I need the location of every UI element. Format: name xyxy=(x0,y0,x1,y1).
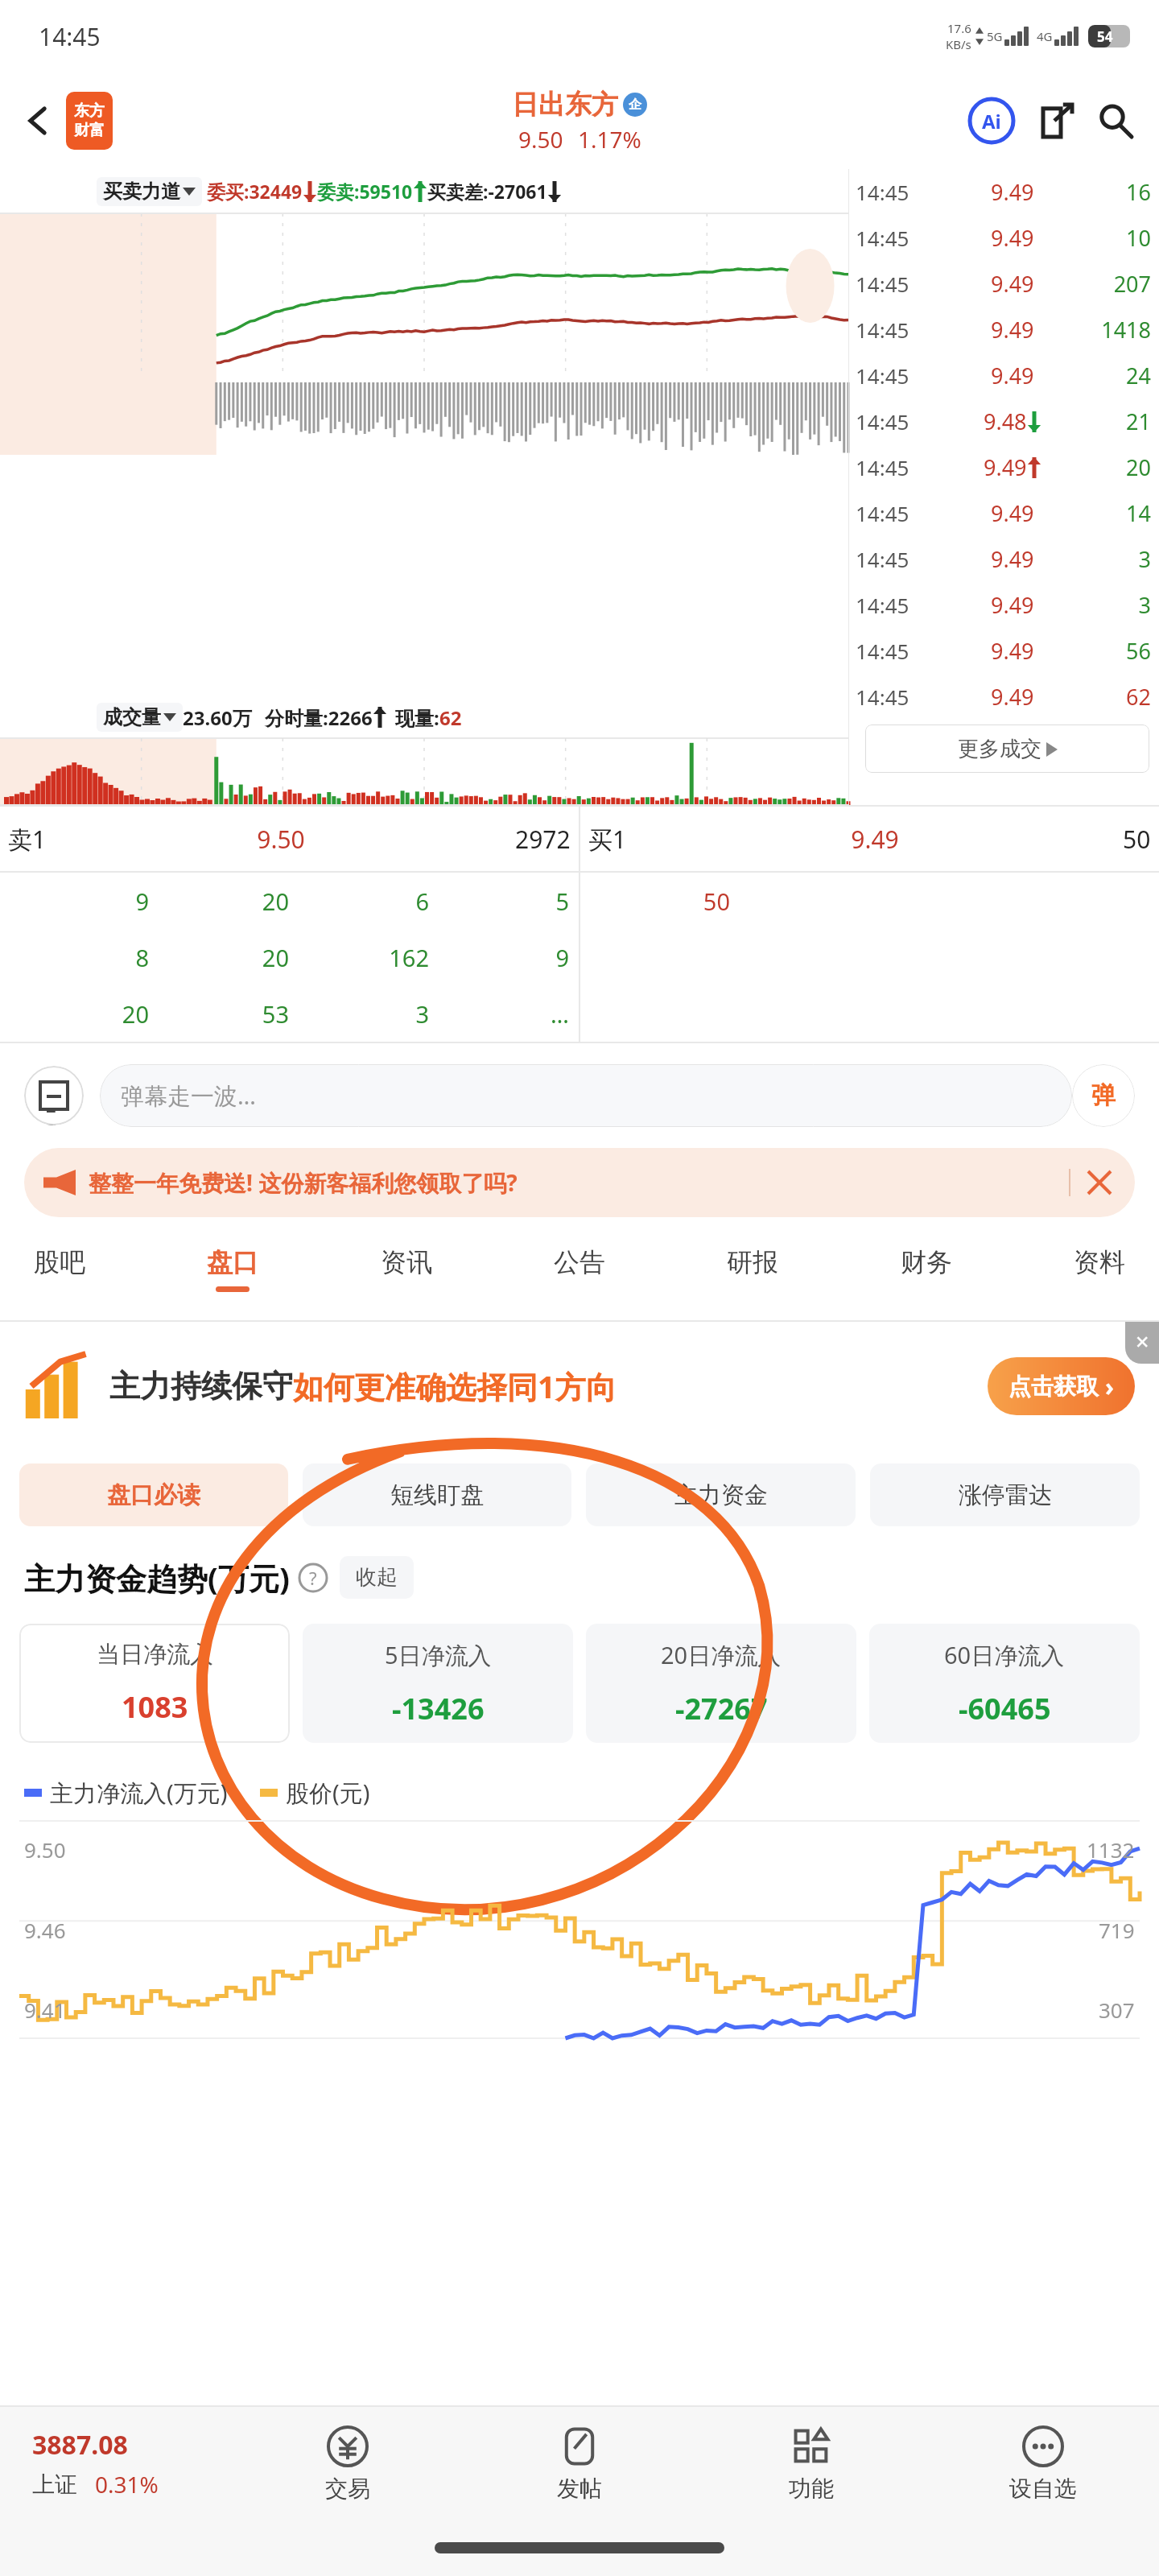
staticText: 5G xyxy=(987,28,1003,44)
staticText: 23.60万 xyxy=(183,704,252,731)
staticText: 盘口必读 xyxy=(107,1480,200,1510)
button[interactable]: 60日净流入 xyxy=(869,1624,1140,1743)
staticText: 弹 xyxy=(1091,1080,1116,1111)
button[interactable]: 14:45 xyxy=(856,628,1159,674)
button[interactable]: 5日净流入 xyxy=(303,1624,573,1743)
button[interactable]: 14:45 xyxy=(856,215,1159,261)
staticText: 设自选 xyxy=(1009,2475,1077,2503)
button[interactable]: 整整一年免费送! 这份新客福利您领取了吗? xyxy=(24,1148,1135,1217)
staticText: 3887.08 xyxy=(32,2427,128,2462)
staticText: 53 xyxy=(149,998,289,1030)
button[interactable]: 当日净流入 xyxy=(19,1624,290,1743)
staticText: 9.50 xyxy=(518,124,563,155)
button[interactable]: 短线盯盘 xyxy=(303,1463,571,1526)
button[interactable]: 14:45 xyxy=(856,674,1159,720)
staticText: 60日净流入 xyxy=(944,1639,1065,1671)
button[interactable]: Help xyxy=(298,1563,328,1593)
staticText: 14 xyxy=(1069,498,1151,528)
button[interactable]: 点击获取 xyxy=(988,1357,1135,1415)
button[interactable]: Search xyxy=(1093,98,1138,143)
staticText: 50 xyxy=(1123,823,1151,856)
button[interactable]: 买卖力道 xyxy=(103,180,196,204)
staticText: 9.49 xyxy=(991,498,1034,528)
staticText: 1132 xyxy=(1087,1835,1135,1864)
staticText: 20 xyxy=(1069,452,1151,482)
staticText: 成交量 xyxy=(103,705,161,729)
button[interactable]: 资料 xyxy=(1064,1240,1135,1298)
staticText: 日出东方 xyxy=(512,88,618,122)
staticText: 研报 xyxy=(727,1246,778,1278)
button[interactable]: East Money xyxy=(66,92,113,150)
staticText: 9.41 xyxy=(24,1996,66,2024)
staticText: 主力净流入(万元) xyxy=(50,1777,228,1809)
staticText: 14:45 xyxy=(856,637,956,665)
staticText: -60465 xyxy=(959,1689,1051,1728)
button[interactable]: 14:45 xyxy=(856,169,1159,215)
button[interactable]: 研报 xyxy=(717,1240,788,1298)
button[interactable]: Close ad xyxy=(1125,1322,1159,1364)
button[interactable]: Back xyxy=(14,97,63,145)
staticText: 涨停雷达 xyxy=(959,1480,1052,1510)
button[interactable]: 发帖 xyxy=(464,2420,695,2508)
button[interactable]: 14:45 xyxy=(856,398,1159,444)
staticText: 收起 xyxy=(356,1564,398,1591)
button[interactable]: 收起 xyxy=(356,1564,398,1591)
button[interactable]: 20日净流入 xyxy=(586,1624,856,1743)
button[interactable]: 涨停雷达 xyxy=(870,1463,1140,1526)
staticText: 5日净流入 xyxy=(385,1639,492,1671)
staticText: 17.6 xyxy=(947,20,971,36)
button[interactable]: 盘口 xyxy=(197,1240,268,1298)
staticText: 如何更准确选择同1方向 xyxy=(293,1365,617,1407)
button[interactable]: 公告 xyxy=(544,1240,615,1298)
button[interactable]: 更多成交 xyxy=(865,724,1149,773)
button[interactable]: 14:45 xyxy=(856,536,1159,582)
button[interactable]: 成交量 xyxy=(103,705,176,729)
button[interactable]: 14:45 xyxy=(856,307,1159,353)
staticText: 9.49 xyxy=(991,544,1034,574)
staticText: 9.49 xyxy=(991,682,1034,712)
button[interactable]: AI xyxy=(967,97,1016,145)
button[interactable]: 14:45 xyxy=(856,353,1159,398)
staticText: 企 xyxy=(629,97,641,113)
staticText: 2972 xyxy=(515,823,571,856)
staticText: 卖1 xyxy=(8,823,47,856)
button[interactable]: 功能 xyxy=(695,2420,927,2508)
button[interactable]: News xyxy=(24,1066,84,1125)
staticText: 9.49 xyxy=(991,269,1034,299)
button[interactable]: 股吧 xyxy=(24,1240,95,1298)
staticText: 14:45 xyxy=(856,683,956,711)
staticText: 50 xyxy=(590,885,730,917)
staticText: 14:45 xyxy=(856,178,956,206)
button[interactable]: 财务 xyxy=(891,1240,962,1298)
staticText: 719 xyxy=(1099,1916,1135,1944)
button[interactable]: 3887.08 xyxy=(0,2427,232,2500)
button[interactable]: Share xyxy=(1033,98,1079,143)
button[interactable]: 设自选 xyxy=(927,2420,1159,2508)
button[interactable]: 弹幕走一波… xyxy=(100,1064,1072,1127)
button[interactable]: Send xyxy=(1072,1064,1135,1127)
staticText: 162 xyxy=(289,942,429,973)
staticText: 14:45 xyxy=(39,20,101,53)
button[interactable]: 14:45 xyxy=(856,490,1159,536)
button[interactable]: 14:45 xyxy=(856,582,1159,628)
button[interactable]: 交易 xyxy=(232,2420,464,2508)
staticText: 6 xyxy=(289,885,429,917)
staticText: 委卖:59510 xyxy=(317,179,413,204)
staticText: 9 xyxy=(429,942,569,973)
staticText: 9.46 xyxy=(24,1916,66,1944)
button[interactable]: 主力资金 xyxy=(586,1463,856,1526)
button[interactable]: Close xyxy=(1083,1166,1116,1199)
button[interactable]: 14:45 xyxy=(856,261,1159,307)
staticText: 4G xyxy=(1037,28,1053,44)
button[interactable]: 盘口必读 xyxy=(19,1463,288,1526)
button[interactable]: 14:45 xyxy=(856,444,1159,490)
staticText: 5 xyxy=(429,885,569,917)
staticText: 财务 xyxy=(901,1246,952,1278)
staticText: 股价(元) xyxy=(286,1777,370,1809)
staticText: 公告 xyxy=(554,1246,605,1278)
staticText: 20日净流入 xyxy=(661,1639,782,1671)
staticText: 弹幕走一波… xyxy=(121,1080,256,1112)
staticText: 10 xyxy=(1069,223,1151,253)
staticText: 14:45 xyxy=(856,499,956,527)
button[interactable]: 资讯 xyxy=(371,1240,442,1298)
